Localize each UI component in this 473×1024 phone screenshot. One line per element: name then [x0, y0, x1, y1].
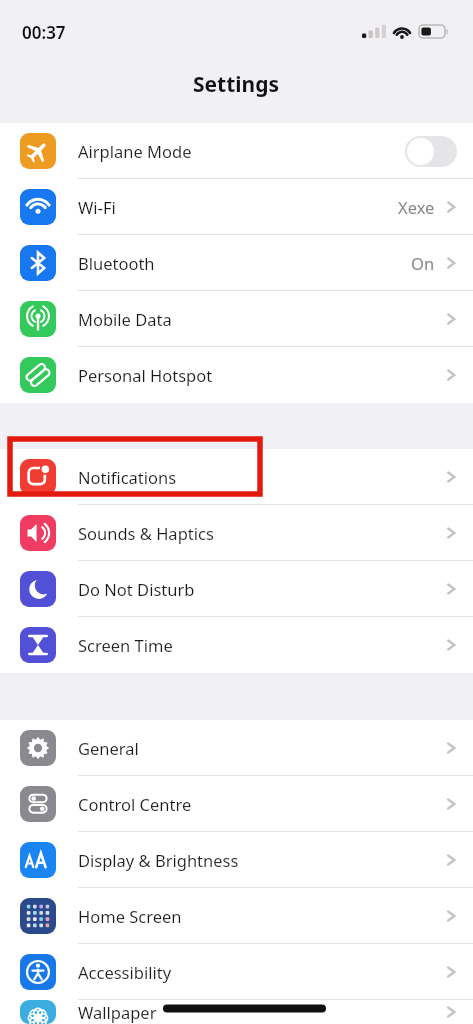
button[interactable]: Wallpaper: [0, 1000, 473, 1024]
button[interactable]: Sounds & Haptics: [0, 505, 473, 561]
button[interactable]: Home Screen: [0, 888, 473, 944]
button[interactable]: Screen Time: [0, 617, 473, 673]
button[interactable]: Bluetooth: [0, 235, 473, 291]
button[interactable]: General: [0, 720, 473, 776]
button[interactable]: Personal Hotspot: [0, 347, 473, 403]
staticText: Wi-Fi: [78, 196, 116, 218]
staticText: Accessibility: [78, 961, 172, 983]
staticText: Do Not Disturb: [78, 578, 195, 600]
staticText: Notifications: [78, 466, 177, 488]
button[interactable]: Display & Brightness: [0, 832, 473, 888]
button[interactable]: Mobile Data: [0, 291, 473, 347]
staticText: Airplane Mode: [78, 140, 192, 162]
button[interactable]: Notifications: [0, 449, 473, 505]
staticText: Bluetooth: [78, 252, 155, 274]
button[interactable]: Airplane Mode toggle, off: [405, 136, 457, 167]
staticText: Settings: [193, 70, 280, 99]
staticText: General: [78, 737, 139, 759]
staticText: Mobile Data: [78, 308, 172, 330]
staticText: Sounds & Haptics: [78, 522, 214, 544]
button[interactable]: Control Centre: [0, 776, 473, 832]
staticText: Control Centre: [78, 793, 192, 815]
button[interactable]: Accessibility: [0, 944, 473, 1000]
staticText: Screen Time: [78, 634, 173, 656]
button[interactable]: Airplane Mode: [0, 123, 473, 179]
button[interactable]: Wi-Fi: [0, 179, 473, 235]
staticText: On: [411, 252, 435, 274]
staticText: 00:37: [22, 21, 66, 44]
staticText: Xexe: [398, 196, 435, 218]
staticText: Display & Brightness: [78, 849, 239, 871]
staticText: Wallpaper: [78, 1001, 157, 1023]
staticText: Home Screen: [78, 905, 182, 927]
button[interactable]: Do Not Disturb: [0, 561, 473, 617]
staticText: Personal Hotspot: [78, 364, 213, 386]
